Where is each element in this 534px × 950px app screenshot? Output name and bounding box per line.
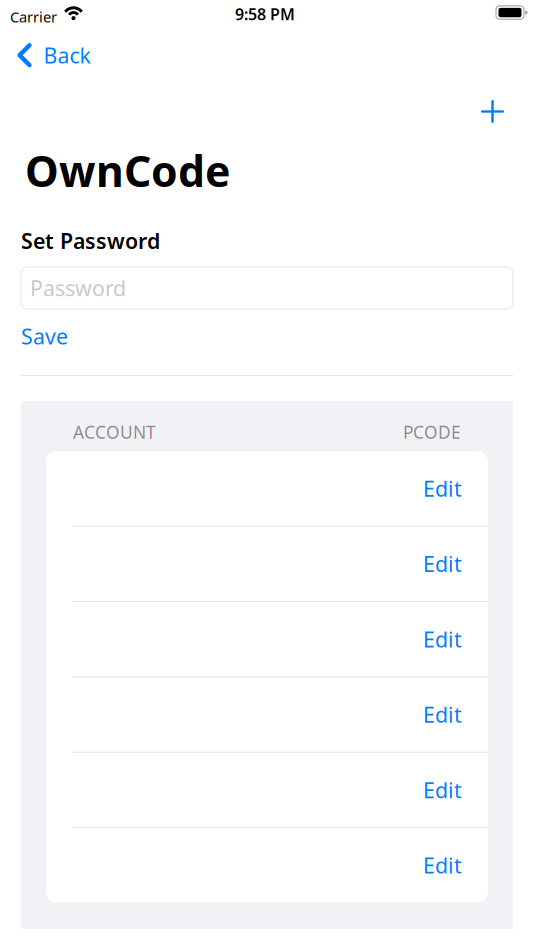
- button[interactable]: Add: [472, 91, 513, 132]
- staticText: Carrier: [10, 7, 57, 26]
- staticText: ACCOUNT: [73, 420, 156, 443]
- staticText: 9:58 PM: [235, 3, 295, 25]
- staticText: Edit: [423, 851, 462, 879]
- staticText: Password: [30, 274, 126, 302]
- button[interactable]: Edit: [415, 542, 470, 586]
- button[interactable]: Edit: [415, 692, 470, 737]
- staticText: OwnCode: [25, 142, 230, 199]
- button[interactable]: Edit: [415, 617, 470, 661]
- staticText: Save: [21, 322, 68, 350]
- staticText: Edit: [423, 474, 462, 503]
- button[interactable]: Edit: [415, 466, 470, 511]
- staticText: PCODE: [403, 420, 461, 443]
- staticText: Edit: [423, 550, 462, 578]
- button[interactable]: Back: [0, 36, 104, 74]
- button[interactable]: Password: [21, 267, 513, 309]
- staticText: Set Password: [21, 226, 160, 255]
- staticText: Edit: [423, 700, 462, 729]
- button[interactable]: Edit: [415, 768, 470, 812]
- button[interactable]: Edit: [415, 843, 470, 887]
- staticText: Edit: [423, 776, 462, 804]
- staticText: Back: [43, 41, 90, 69]
- button[interactable]: Save: [0, 316, 89, 356]
- staticText: Edit: [423, 625, 462, 653]
